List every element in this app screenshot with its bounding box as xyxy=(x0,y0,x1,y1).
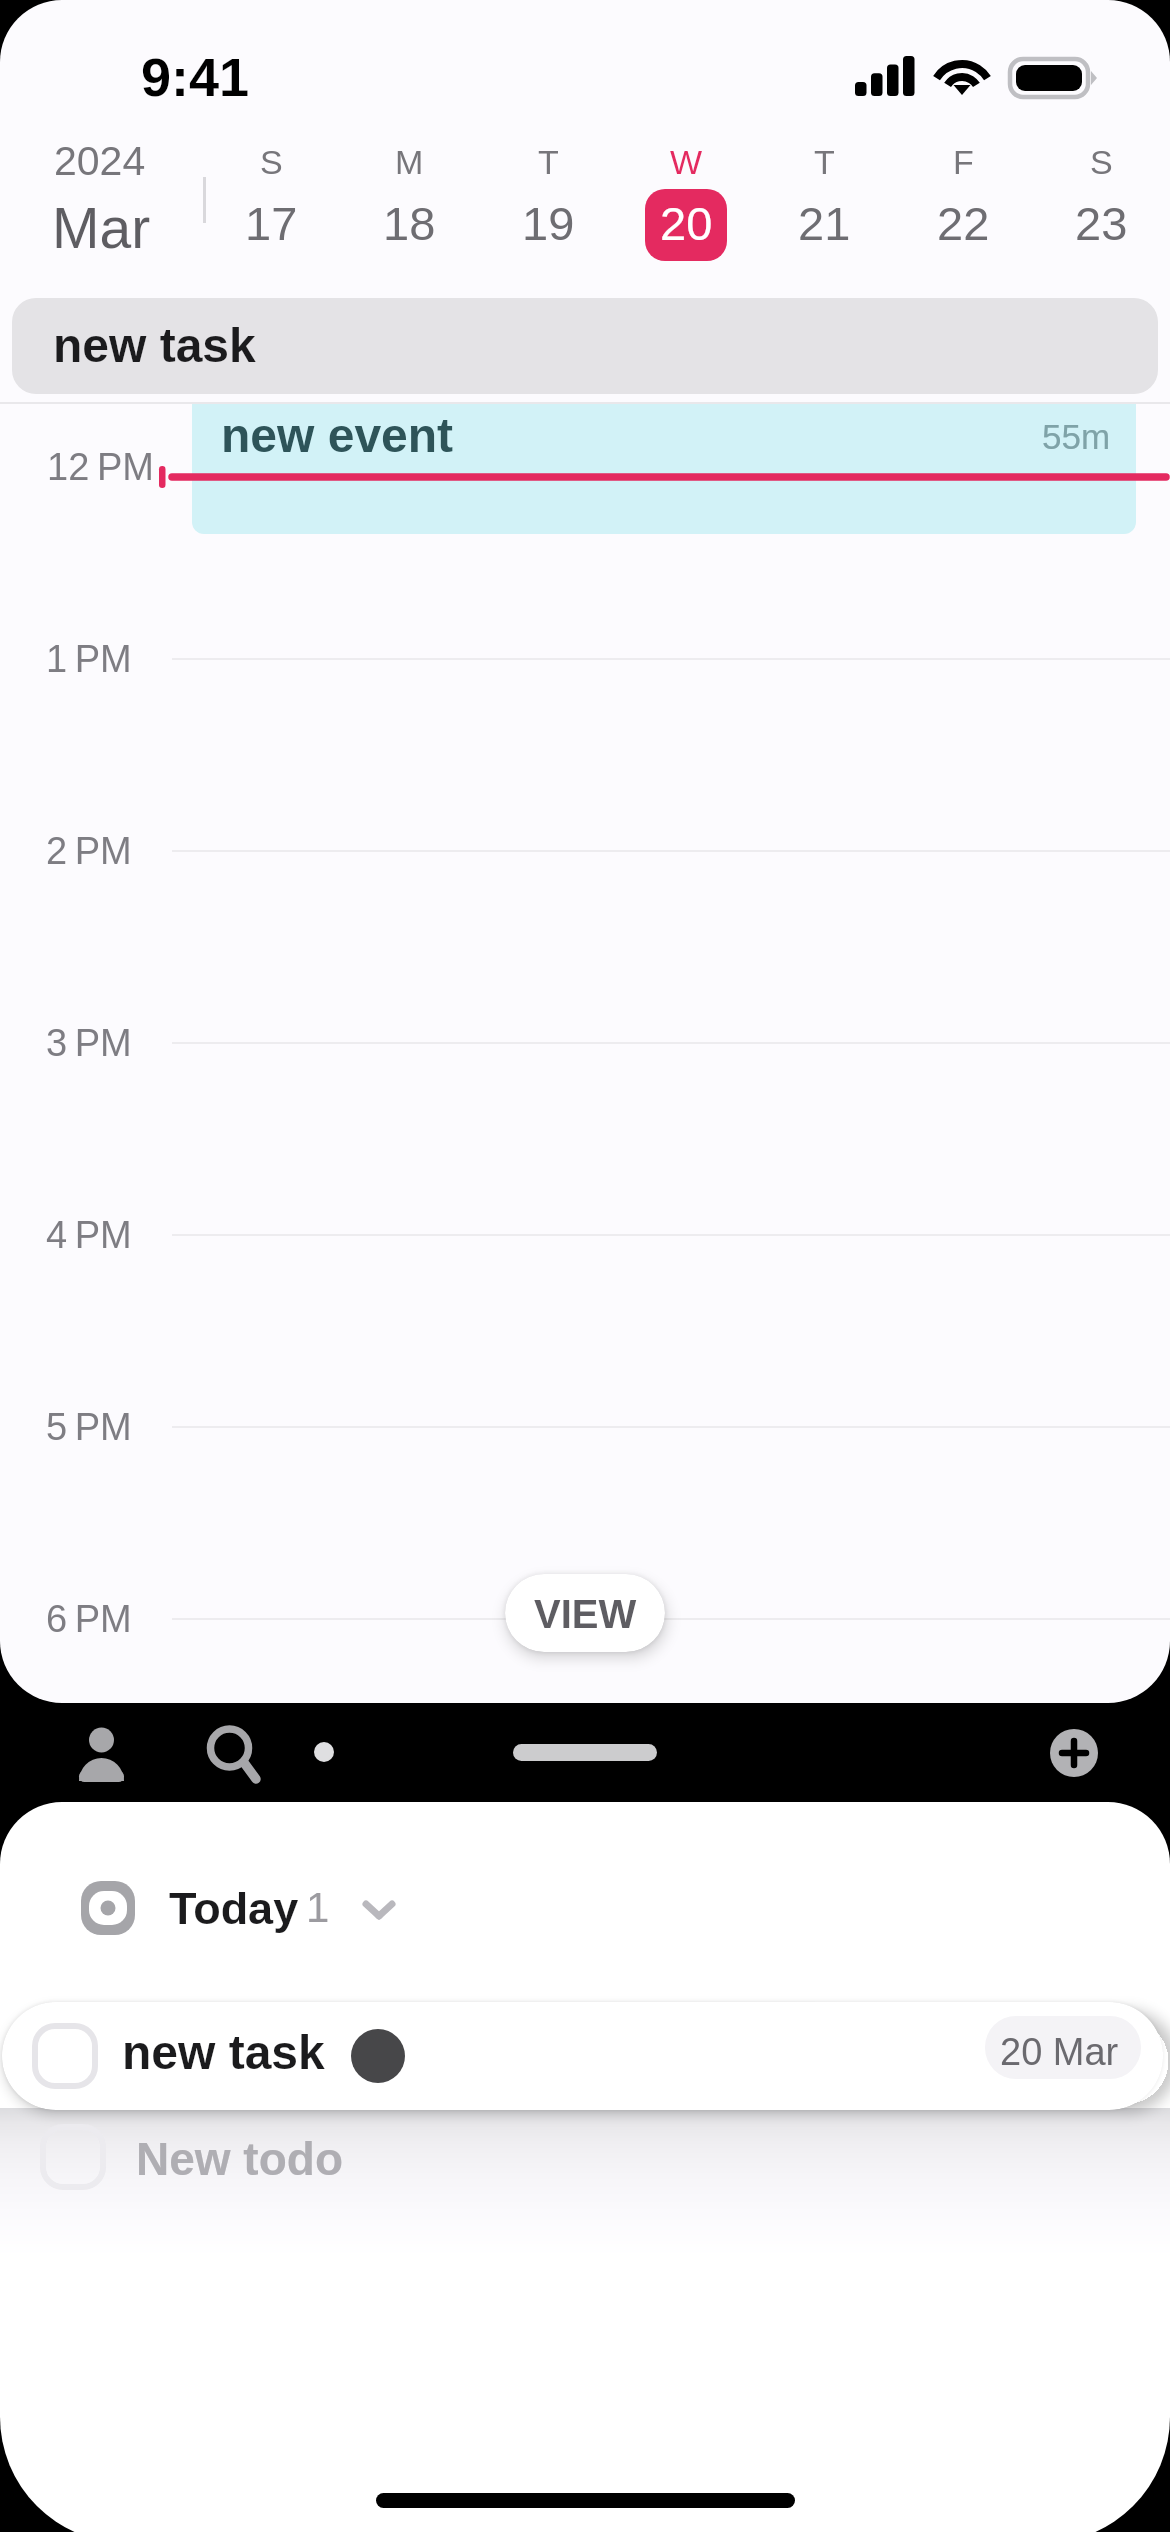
button[interactable]: VIEW xyxy=(505,1574,665,1652)
staticText: VIEW xyxy=(534,1592,637,1637)
staticText: 4 PM xyxy=(46,1214,132,1256)
staticText: 2 PM xyxy=(46,830,132,872)
button[interactable]: More xyxy=(314,1742,334,1762)
staticText: Mar xyxy=(52,196,151,260)
staticText: 55m xyxy=(1042,417,1111,456)
staticText: 12 PM xyxy=(47,446,154,488)
staticText: 17 xyxy=(245,197,298,250)
button[interactable]: Add xyxy=(1050,1729,1098,1777)
button[interactable]: F xyxy=(908,143,1018,267)
staticText: 23 xyxy=(1075,197,1128,250)
button[interactable]: new event xyxy=(192,404,1136,534)
staticText: W xyxy=(670,143,703,181)
staticText: 19 xyxy=(522,197,575,250)
staticText: new task xyxy=(122,2026,325,2080)
staticText: 2024 xyxy=(54,138,146,184)
button[interactable]: T xyxy=(493,143,603,267)
staticText: new task xyxy=(53,319,256,373)
button[interactable]: Today xyxy=(70,1870,420,1948)
button[interactable]: Search xyxy=(200,1720,264,1784)
button[interactable]: Profile xyxy=(71,1717,133,1789)
button[interactable]: New todo xyxy=(37,2117,537,2197)
staticText: 20 xyxy=(660,197,713,250)
staticText: F xyxy=(953,143,974,181)
button[interactable]: W xyxy=(631,143,741,267)
staticText: 1 PM xyxy=(46,638,132,680)
staticText: 18 xyxy=(383,197,436,250)
staticText: S xyxy=(1090,143,1113,181)
button[interactable]: T xyxy=(769,143,879,267)
staticText: 5 PM xyxy=(46,1406,132,1448)
button[interactable]: S xyxy=(1046,143,1156,267)
button[interactable]: new task xyxy=(12,298,1158,394)
staticText: 6 PM xyxy=(46,1598,132,1640)
staticText: 20 Mar xyxy=(1000,2031,1119,2073)
staticText: M xyxy=(395,143,424,181)
staticText: Today xyxy=(169,1883,299,1933)
staticText: 9:41 xyxy=(141,47,250,107)
staticText: 3 PM xyxy=(46,1022,132,1064)
button[interactable]: new task xyxy=(2,2002,1163,2110)
staticText: 21 xyxy=(798,197,851,250)
staticText: S xyxy=(260,143,283,181)
staticText: new event xyxy=(221,409,454,463)
staticText: T xyxy=(538,143,559,181)
staticText: 22 xyxy=(937,197,990,250)
button[interactable]: M xyxy=(354,143,464,267)
button[interactable]: S xyxy=(216,143,326,267)
staticText: 1 xyxy=(306,1884,330,1931)
staticText: T xyxy=(814,143,835,181)
staticText: New todo xyxy=(136,2133,343,2184)
